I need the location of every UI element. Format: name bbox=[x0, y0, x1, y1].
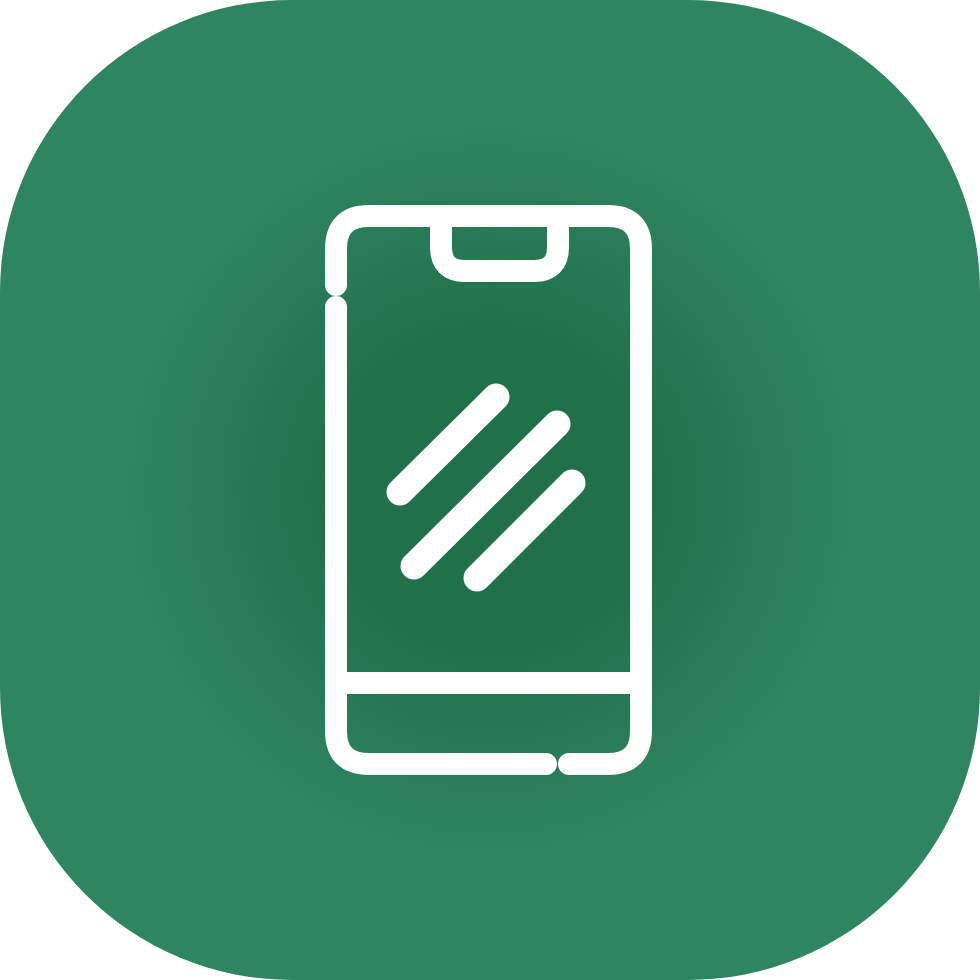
button[interactable]: Smartphone app icon bbox=[0, 0, 980, 980]
